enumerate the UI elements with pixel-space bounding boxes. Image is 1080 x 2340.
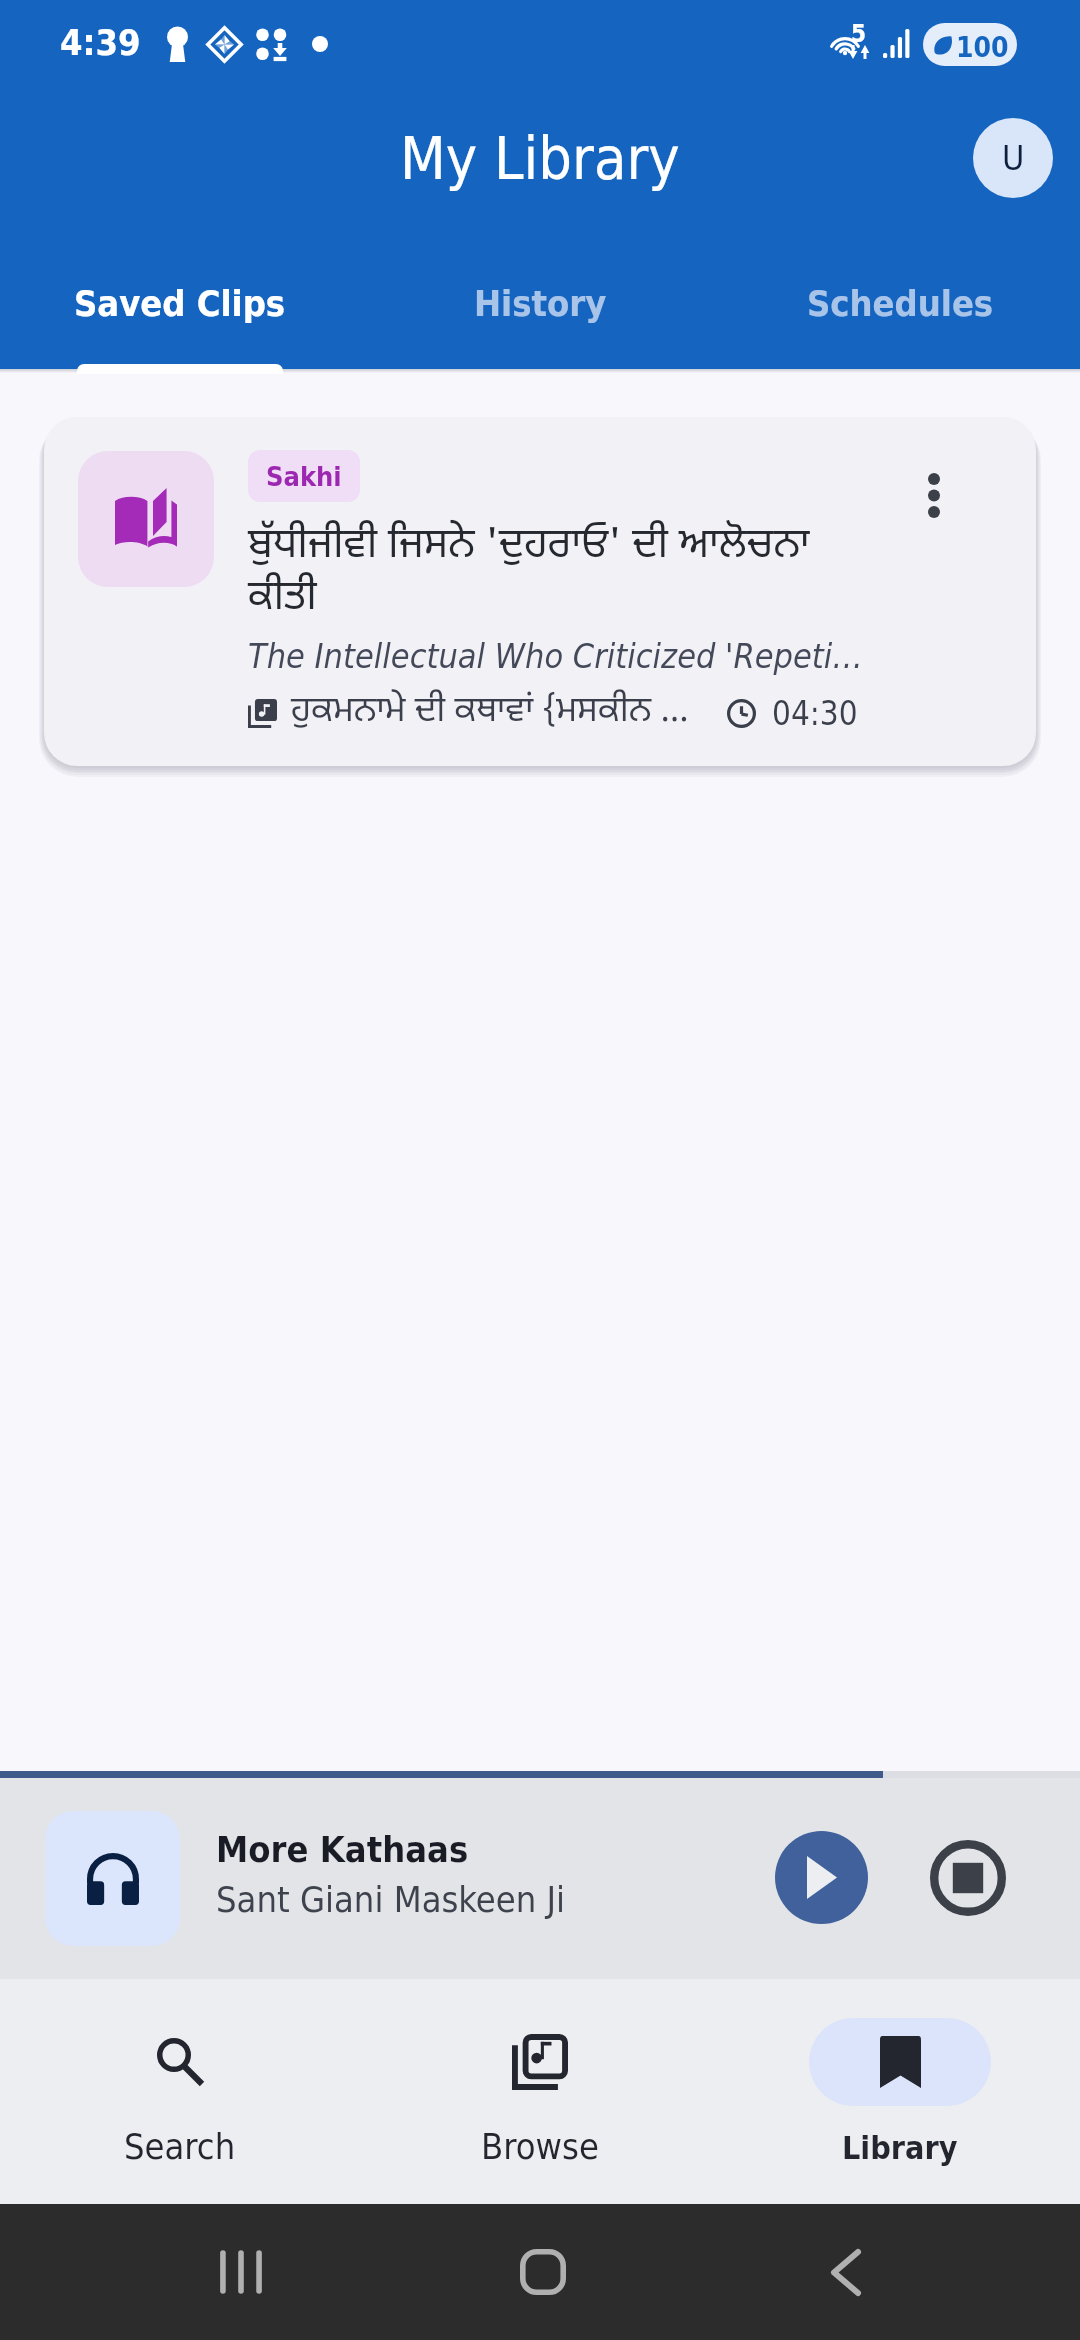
button[interactable]: U (973, 118, 1053, 198)
staticText: ਬੁੱਧੀਜੀਵੀ ਜਿਸਨੇ 'ਦੁਹਰਾਓ' ਦੀ ਆਲੋਚਨਾ ਕੀਤੀ (248, 520, 858, 626)
staticText: Sakhi (266, 461, 342, 492)
staticText: My Library (400, 124, 680, 193)
staticText: The Intellectual Who Criticized 'Repeti… (248, 636, 863, 676)
button[interactable]: History (360, 262, 720, 369)
button[interactable]: Browse (360, 1979, 720, 2204)
button[interactable]: Schedules (720, 262, 1080, 369)
staticText: 5 (851, 20, 867, 48)
staticText: Browse (481, 2126, 599, 2168)
staticText: Library (842, 2129, 958, 2166)
button[interactable]: Search (0, 1979, 360, 2204)
button[interactable]: Library (720, 1979, 1080, 2204)
button[interactable]: Sakhi (44, 417, 1036, 766)
staticText: More Kathaas (216, 1829, 469, 1871)
staticText: Schedules (807, 283, 994, 325)
staticText: Saved Clips (74, 283, 286, 325)
button[interactable]: Play (775, 1831, 868, 1924)
staticText: 4:39 (60, 22, 141, 64)
button[interactable]: Back (800, 2226, 892, 2318)
staticText: ਹੁਕਮਨਾਮੇ ਦੀ ਕਥਾਵਾਂ {ਮਸਕੀਨ … (291, 690, 689, 736)
staticText: History (474, 283, 607, 325)
staticText: U (1002, 138, 1025, 178)
staticText: Search (124, 2126, 236, 2168)
staticText: 04:30 (772, 694, 858, 732)
staticText: 100 (956, 31, 1009, 64)
button[interactable]: Saved Clips (0, 262, 360, 369)
button[interactable]: Recents (195, 2226, 287, 2318)
button[interactable]: Home (497, 2226, 589, 2318)
staticText: Sant Giani Maskeen Ji (216, 1879, 566, 1921)
button[interactable]: Stop (929, 1839, 1007, 1917)
button[interactable]: More options (890, 451, 978, 539)
